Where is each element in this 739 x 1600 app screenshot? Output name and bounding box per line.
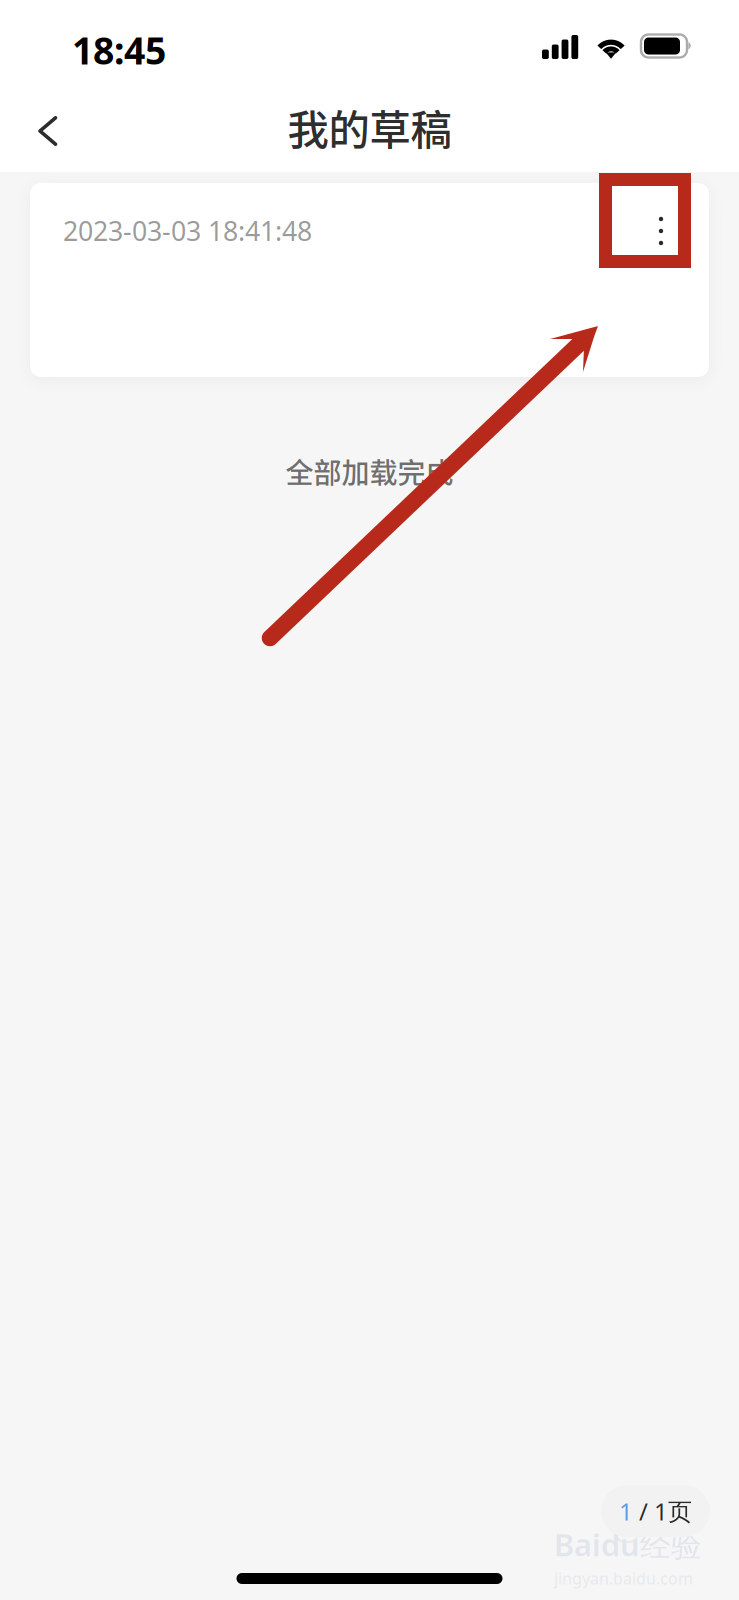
staticText: 18:45 <box>72 25 166 75</box>
staticText: 1 <box>619 1495 633 1527</box>
staticText: 全部加载完成 <box>285 451 453 491</box>
staticText: 2023-03-03 18:41:48 <box>63 213 312 248</box>
button[interactable]: Back <box>12 95 84 167</box>
staticText: jingyan.baidu.com <box>554 1568 693 1589</box>
button[interactable]: More options <box>622 191 700 271</box>
staticText: Baidu经验 <box>554 1524 702 1565</box>
staticText: 我的草稿 <box>287 97 451 157</box>
staticText: / 1页 <box>633 1495 692 1527</box>
